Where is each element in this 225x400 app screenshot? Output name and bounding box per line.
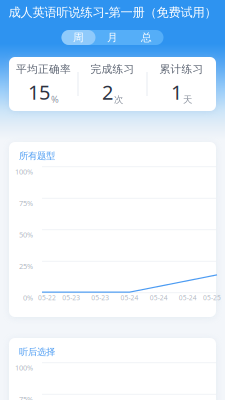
staticText: 成人英语听说练习-第一册（免费试用） xyxy=(8,4,216,20)
staticText: 累计练习 xyxy=(159,63,203,76)
staticText: 0% xyxy=(23,293,33,303)
button[interactable]: 总 xyxy=(129,30,163,45)
staticText: 15 xyxy=(28,79,50,105)
staticText: 总 xyxy=(141,31,152,44)
staticText: 平均正确率 xyxy=(16,63,71,76)
staticText: 完成练习 xyxy=(90,63,134,76)
button[interactable]: 周 xyxy=(61,30,95,45)
staticText: 1 xyxy=(171,79,182,105)
staticText: 05-23 xyxy=(91,293,109,302)
staticText: 05-23 xyxy=(62,293,80,302)
button[interactable]: 月 xyxy=(95,30,129,45)
staticText: 次 xyxy=(114,94,123,105)
staticText: 75% xyxy=(19,394,33,400)
staticText: % xyxy=(51,93,59,105)
staticText: 月 xyxy=(107,31,118,44)
staticText: 所有题型 xyxy=(19,150,55,162)
staticText: 05-25 xyxy=(203,293,221,302)
staticText: 25% xyxy=(19,261,33,271)
staticText: 05-24 xyxy=(179,293,197,302)
staticText: 05-24 xyxy=(120,293,138,302)
staticText: 05-24 xyxy=(150,293,168,302)
staticText: 75% xyxy=(19,198,33,208)
staticText: 2 xyxy=(102,79,113,105)
staticText: 100% xyxy=(15,363,33,373)
staticText: 100% xyxy=(15,167,33,177)
staticText: 天 xyxy=(183,94,192,105)
staticText: 50% xyxy=(19,230,33,240)
staticText: 05-22 xyxy=(38,293,56,302)
staticText: 周 xyxy=(73,31,84,44)
staticText: 听后选择 xyxy=(19,346,55,358)
